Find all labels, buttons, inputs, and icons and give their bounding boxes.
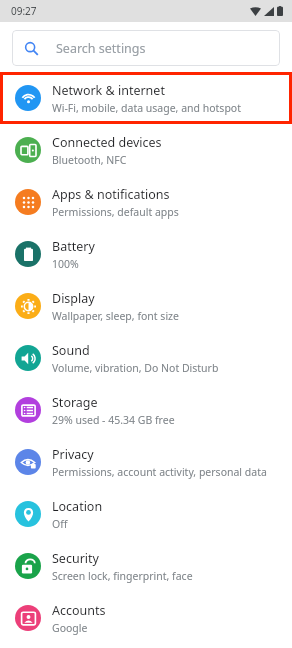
other: Search (24, 41, 39, 56)
button[interactable]: Display (0, 280, 292, 332)
button[interactable]: Accounts (0, 592, 292, 644)
button[interactable]: Privacy (0, 436, 292, 488)
staticText: Search settings (56, 40, 146, 57)
staticText: Privacy (52, 446, 94, 463)
button[interactable]: Battery (0, 228, 292, 280)
staticText: Bluetooth, NFC (52, 153, 127, 167)
button[interactable]: Network & internet (0, 72, 292, 124)
staticText: Network & internet (52, 82, 165, 99)
button[interactable]: Security (0, 540, 292, 592)
staticText: Connected devices (52, 134, 162, 151)
staticText: Sound (52, 342, 90, 359)
button[interactable]: Storage (0, 384, 292, 436)
staticText: Volume, vibration, Do Not Disturb (52, 361, 219, 375)
staticText: Wallpaper, sleep, font size (52, 309, 179, 323)
button[interactable]: Connected devices (0, 124, 292, 176)
staticText: Location (52, 498, 103, 515)
staticText: Google (52, 621, 88, 635)
staticText: Storage (52, 394, 98, 411)
staticText: Wi-Fi, mobile, data usage, and hotspot (52, 101, 241, 115)
button[interactable]: Location (0, 488, 292, 540)
staticText: Screen lock, fingerprint, face (52, 569, 193, 583)
staticText: Security (52, 550, 99, 567)
button[interactable]: Apps & notifications (0, 176, 292, 228)
staticText: Permissions, default apps (52, 205, 179, 219)
staticText: Permissions, account activity, personal … (52, 465, 267, 479)
staticText: Display (52, 290, 95, 307)
button[interactable]: Sound (0, 332, 292, 384)
staticText: Accounts (52, 602, 106, 619)
staticText: Apps & notifications (52, 186, 170, 203)
staticText: 29% used - 45.34 GB free (52, 413, 175, 427)
staticText: Off (52, 517, 68, 531)
staticText: 09:27 (11, 4, 37, 18)
staticText: Battery (52, 238, 95, 255)
button[interactable]: Search (12, 30, 280, 66)
staticText: 100% (52, 257, 79, 271)
